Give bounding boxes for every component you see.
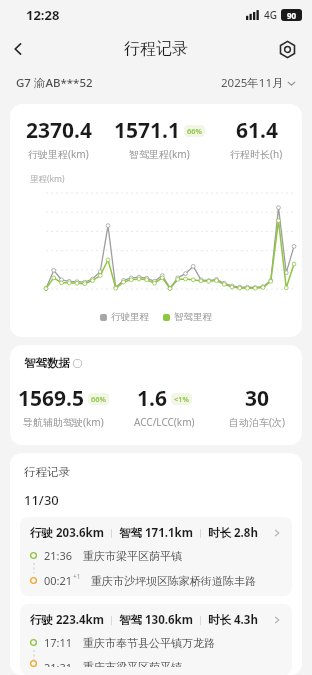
staticText: 智驾数据 bbox=[24, 356, 70, 370]
staticText: 2025年11月 bbox=[221, 75, 284, 91]
staticText: 智驾 130.6km bbox=[119, 612, 193, 628]
button[interactable]: 2025年11月 bbox=[221, 75, 296, 91]
button[interactable]: 行驶 223.4km bbox=[20, 604, 292, 675]
staticText: 重庆市奉节县公平镇万龙路 bbox=[83, 636, 215, 650]
staticText: 66% bbox=[91, 394, 106, 404]
staticText: 1.6 bbox=[137, 384, 167, 413]
staticText: 自动泊车(次) bbox=[229, 415, 285, 429]
staticText: 4G bbox=[264, 8, 277, 22]
staticText: 00:21 bbox=[44, 573, 73, 588]
staticText: 行程时长(h) bbox=[230, 147, 283, 161]
staticText: 智驾里程 bbox=[174, 311, 212, 323]
staticText: 里程(km) bbox=[30, 173, 65, 185]
button[interactable]: Back bbox=[0, 31, 36, 67]
staticText: 智驾 171.1km bbox=[119, 525, 193, 541]
staticText: 12:28 bbox=[26, 6, 60, 24]
staticText: 2370.4 bbox=[26, 116, 92, 145]
button[interactable]: Settings bbox=[270, 32, 304, 66]
staticText: 61.4 bbox=[236, 116, 278, 145]
staticText: 行驶里程(km) bbox=[28, 147, 89, 161]
staticText: 1571.1 bbox=[114, 116, 180, 145]
staticText: 重庆市梁平区荫平镇 bbox=[83, 549, 182, 563]
staticText: +1 bbox=[73, 572, 81, 581]
staticText: 行驶里程 bbox=[111, 311, 149, 323]
staticText: 17:11 bbox=[44, 635, 73, 650]
staticText: 智驾里程(km) bbox=[129, 147, 190, 161]
staticText: 行驶 203.6km bbox=[30, 525, 104, 541]
staticText: 11/30 bbox=[24, 491, 59, 509]
staticText: 30 bbox=[245, 384, 270, 413]
staticText: 21:36 bbox=[44, 548, 73, 563]
staticText: 行驶 223.4km bbox=[30, 612, 104, 628]
staticText: 时长 4.3h bbox=[208, 612, 258, 628]
staticText: 时长 2.8h bbox=[208, 525, 258, 541]
staticText: 21:31 bbox=[44, 660, 73, 667]
staticText: 行程记录 bbox=[24, 465, 70, 479]
staticText: G7 渝AB***52 bbox=[16, 75, 93, 91]
button[interactable]: 行驶 203.6km bbox=[20, 517, 292, 596]
staticText: 90 bbox=[287, 10, 297, 21]
staticText: 1569.5 bbox=[18, 384, 84, 413]
button[interactable]: Info bbox=[73, 359, 82, 368]
staticText: 重庆市沙坪坝区陈家桥街道陈丰路 bbox=[91, 574, 256, 588]
staticText: <1% bbox=[174, 394, 189, 404]
staticText: 66% bbox=[187, 126, 202, 136]
staticText: 重庆市梁平区荫平镇 bbox=[83, 660, 182, 667]
staticText: 行程记录 bbox=[124, 39, 188, 59]
staticText: ACC/LCC(km) bbox=[134, 415, 195, 429]
staticText: 导航辅助驾驶(km) bbox=[23, 415, 104, 429]
